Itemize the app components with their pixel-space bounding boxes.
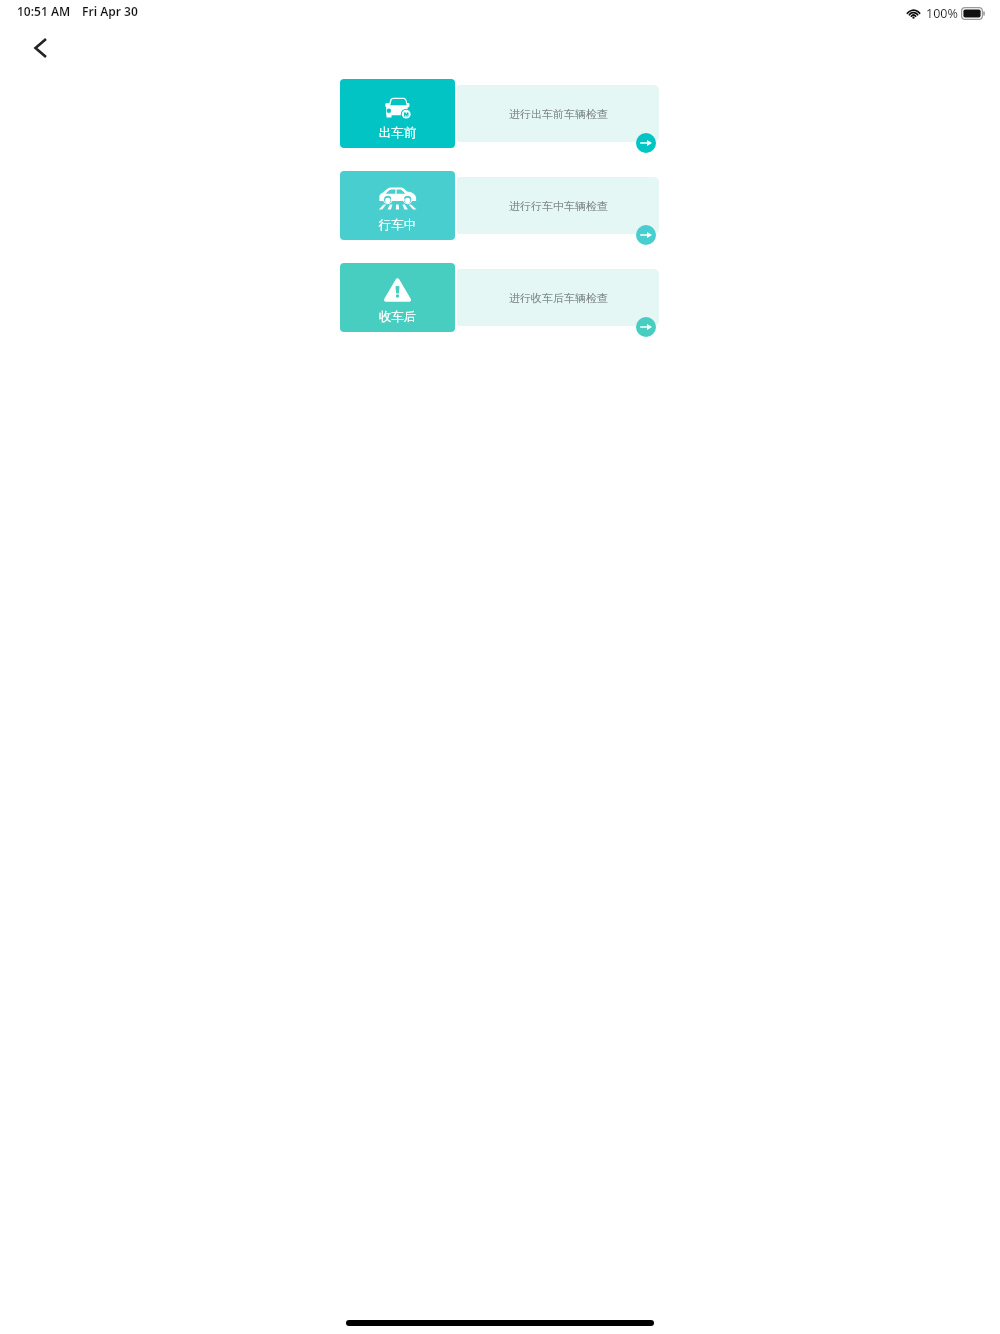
button[interactable]: 进行出车前车辆检查 (457, 85, 659, 142)
button[interactable]: Go (636, 317, 656, 337)
button[interactable]: 行车中 (340, 171, 455, 240)
staticText: 出车前 (340, 125, 455, 141)
staticText: 进行出车前车辆检查 (509, 107, 608, 121)
staticText: Fri Apr 30 (82, 3, 138, 19)
button[interactable]: Go (636, 133, 656, 153)
staticText: 收车后 (340, 309, 455, 325)
button[interactable]: Back (21, 33, 51, 63)
button[interactable]: 进行收车后车辆检查 (457, 269, 659, 326)
staticText: 行车中 (340, 217, 455, 233)
button[interactable]: 进行行车中车辆检查 (457, 177, 659, 234)
staticText: 进行行车中车辆检查 (509, 199, 608, 213)
button[interactable]: 出车前 (340, 79, 455, 148)
staticText: 10:51 AM (17, 3, 71, 19)
staticText: 100% (926, 5, 958, 22)
button[interactable]: 收车后 (340, 263, 455, 332)
button[interactable]: Go (636, 225, 656, 245)
staticText: 进行收车后车辆检查 (509, 291, 608, 305)
